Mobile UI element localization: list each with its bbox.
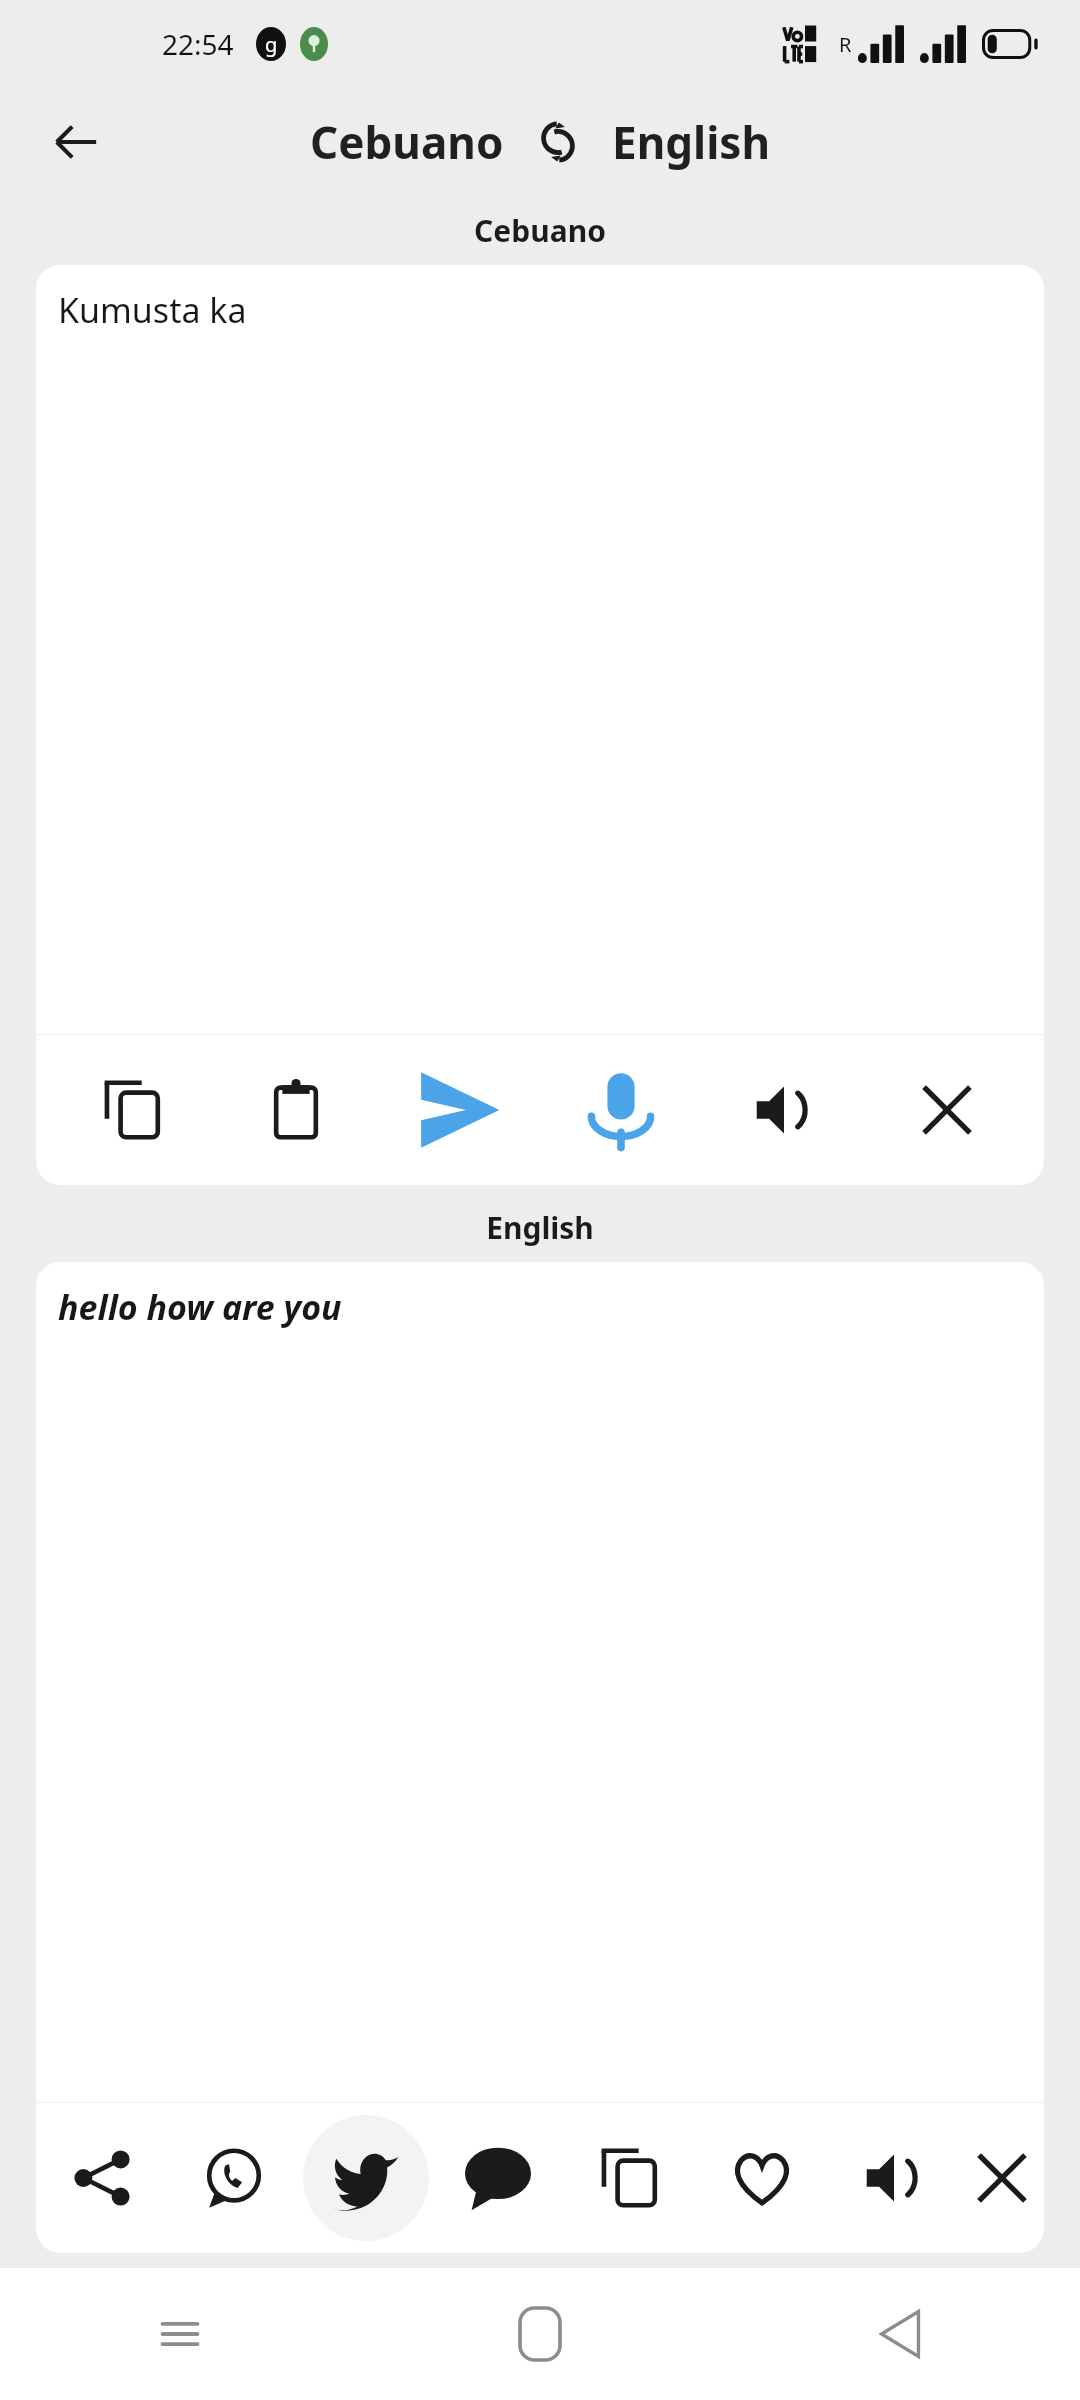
button[interactable]: Twitter <box>300 2112 432 2244</box>
staticText: English <box>0 1207 1080 1248</box>
staticText: Cebuano <box>310 112 504 172</box>
button[interactable]: Share <box>36 2112 168 2244</box>
button[interactable]: Copy <box>564 2112 696 2244</box>
button[interactable]: Back <box>720 2268 1080 2400</box>
staticText: R <box>839 31 852 58</box>
button[interactable]: Clear <box>881 1044 1013 1176</box>
button[interactable]: Translate <box>393 1044 525 1176</box>
button[interactable]: English <box>604 108 779 176</box>
button[interactable]: SMS <box>432 2112 564 2244</box>
button[interactable]: hello how are you <box>36 1262 1044 2102</box>
button[interactable]: Swap languages <box>526 110 590 174</box>
staticText: hello how are you <box>58 1284 342 1330</box>
button[interactable]: Speak <box>718 1044 850 1176</box>
button[interactable]: Paste <box>230 1044 362 1176</box>
button[interactable]: Clear <box>960 2112 1044 2244</box>
button[interactable]: WhatsApp <box>168 2112 300 2244</box>
staticText: 22:54 <box>162 25 234 63</box>
button[interactable]: Cebuano <box>302 108 512 176</box>
button[interactable]: Recent apps <box>0 2268 360 2400</box>
staticText: g <box>265 31 278 58</box>
button[interactable]: Copy <box>67 1044 199 1176</box>
button[interactable]: Speak <box>828 2112 960 2244</box>
button[interactable]: Kumusta ka <box>36 265 1044 1034</box>
button[interactable]: Favourite <box>696 2112 828 2244</box>
button[interactable]: Voice input <box>555 1044 687 1176</box>
button[interactable]: Home <box>360 2268 720 2400</box>
staticText: Cebuano <box>0 210 1080 251</box>
staticText: Kumusta ka <box>58 287 247 333</box>
button[interactable]: Back <box>38 104 114 180</box>
staticText: English <box>612 112 771 172</box>
